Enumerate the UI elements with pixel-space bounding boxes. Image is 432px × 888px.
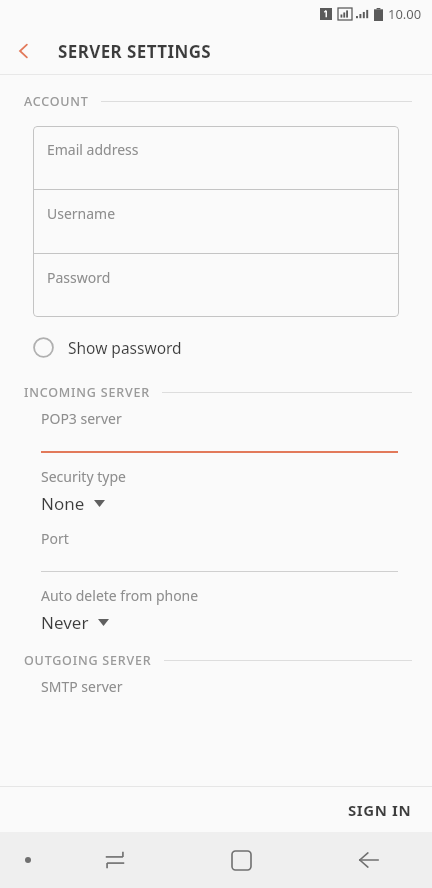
button[interactable]: Email address	[33, 126, 399, 189]
staticText: OUTGOING SERVER	[24, 652, 152, 669]
button[interactable]: Security type	[0, 467, 432, 515]
staticText: Never	[41, 611, 89, 634]
staticText: ACCOUNT	[24, 93, 89, 110]
staticText: SMTP server	[41, 677, 123, 696]
staticText: Username	[47, 204, 116, 223]
staticText: SERVER SETTINGS	[58, 40, 212, 63]
button[interactable]: Password	[33, 254, 399, 317]
staticText: Show password	[68, 337, 182, 358]
button[interactable]: Username	[33, 190, 399, 253]
staticText: INCOMING SERVER	[24, 384, 150, 401]
button[interactable]: SIGN IN	[328, 790, 432, 830]
button[interactable]: Back	[0, 28, 48, 74]
staticText: Auto delete from phone	[41, 586, 199, 605]
staticText: SIGN IN	[348, 800, 412, 820]
staticText: Port	[41, 529, 69, 548]
button[interactable]: Indicator	[22, 854, 34, 866]
button[interactable]: POP3 server	[0, 409, 432, 453]
button[interactable]: Auto delete from phone	[0, 586, 432, 634]
staticText: Security type	[41, 467, 126, 486]
staticText: None	[41, 492, 85, 515]
button[interactable]: Home	[178, 832, 305, 888]
staticText: Password	[47, 268, 111, 287]
staticText: POP3 server	[41, 409, 122, 428]
button[interactable]: Recents	[52, 832, 178, 888]
staticText: 10.00	[388, 5, 422, 23]
button[interactable]: Show password	[0, 329, 432, 366]
button[interactable]: Back	[305, 832, 432, 888]
button[interactable]: Port	[0, 529, 432, 572]
staticText: Email address	[47, 140, 139, 159]
